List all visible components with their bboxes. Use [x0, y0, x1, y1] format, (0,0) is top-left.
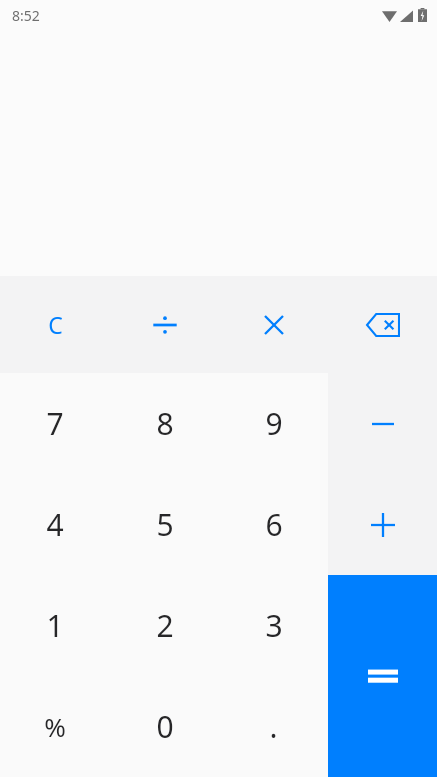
staticText: 5 — [156, 504, 174, 545]
button[interactable]: Minus — [328, 373, 437, 474]
button[interactable]: 9 — [219, 373, 328, 474]
button[interactable]: Equals — [328, 575, 437, 777]
button[interactable]: 1 — [0, 575, 110, 676]
button[interactable]: 6 — [219, 474, 328, 575]
staticText: 8 — [156, 403, 174, 444]
button[interactable]: 8 — [110, 373, 219, 474]
button[interactable]: % — [0, 676, 110, 777]
button[interactable]: 4 — [0, 474, 110, 575]
button[interactable]: . — [219, 676, 328, 777]
button[interactable]: 2 — [110, 575, 219, 676]
staticText: 1 — [46, 605, 64, 646]
button[interactable]: 7 — [0, 373, 110, 474]
button[interactable]: Divide — [110, 276, 219, 373]
staticText: % — [44, 709, 66, 744]
staticText: 7 — [46, 403, 64, 444]
button[interactable]: C — [0, 276, 110, 373]
staticText: 3 — [265, 605, 283, 646]
staticText: 2 — [156, 605, 174, 646]
staticText: 0 — [156, 706, 174, 747]
button[interactable]: Plus — [328, 474, 437, 575]
staticText: 8:52 — [12, 6, 40, 25]
button[interactable]: Backspace — [328, 276, 437, 373]
button[interactable]: 0 — [110, 676, 219, 777]
staticText: C — [48, 309, 63, 340]
button[interactable]: Multiply — [219, 276, 328, 373]
staticText: 9 — [265, 403, 283, 444]
staticText: 6 — [265, 504, 283, 545]
button[interactable]: 5 — [110, 474, 219, 575]
button[interactable]: 3 — [219, 575, 328, 676]
staticText: . — [269, 706, 278, 747]
staticText: 4 — [46, 504, 64, 545]
